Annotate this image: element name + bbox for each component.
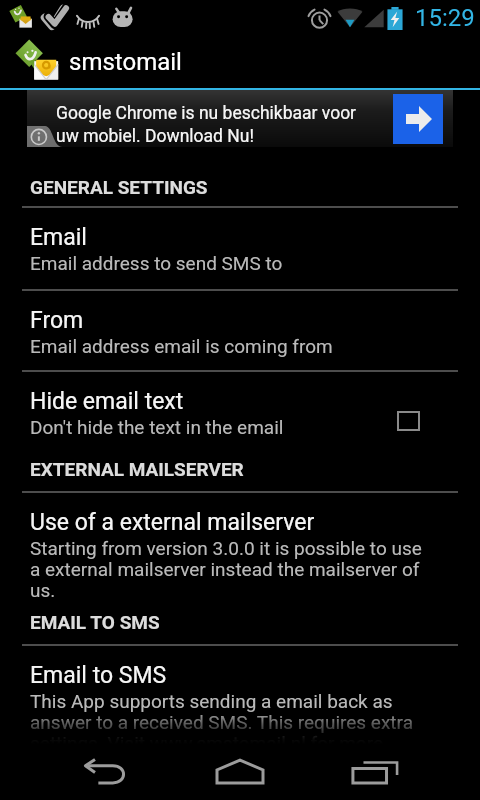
button[interactable]: Use of a external mailserver: [0, 499, 480, 603]
staticText: Email address to send SMS to: [30, 252, 283, 274]
button[interactable]: Home: [202, 744, 278, 800]
staticText: Hide email text: [30, 388, 184, 415]
button[interactable]: From: [0, 297, 480, 393]
button[interactable]: Email: [0, 214, 480, 310]
button[interactable]: Email to SMS: [0, 652, 480, 772]
staticText: EXTERNAL MAILSERVER: [30, 458, 244, 480]
button[interactable]: Back: [69, 744, 145, 800]
button[interactable]: Hide email text: [0, 378, 480, 474]
staticText: Email address email is coming from: [30, 335, 333, 357]
staticText: EMAIL TO SMS: [30, 611, 160, 633]
button[interactable]: Google Chrome is nu beschikbaar voor uw …: [27, 90, 453, 147]
button[interactable]: Open advertisement: [393, 94, 443, 144]
staticText: Starting from version 3.0.0 it is possib…: [30, 537, 431, 601]
button[interactable]: Ad information: [27, 126, 63, 147]
staticText: smstomail: [69, 48, 182, 76]
staticText: Email to SMS: [30, 662, 167, 689]
staticText: Google Chrome is nu beschikbaar voor uw …: [56, 103, 357, 146]
staticText: This App supports sending a email back a…: [30, 690, 431, 754]
staticText: Don't hide the text in the email: [30, 416, 284, 438]
staticText: 15:29: [415, 4, 475, 32]
staticText: GENERAL SETTINGS: [30, 176, 208, 198]
button[interactable]: Recent apps: [337, 744, 413, 800]
staticText: Email: [30, 224, 87, 251]
staticText: Use of a external mailserver: [30, 509, 315, 536]
staticText: From: [30, 307, 84, 334]
